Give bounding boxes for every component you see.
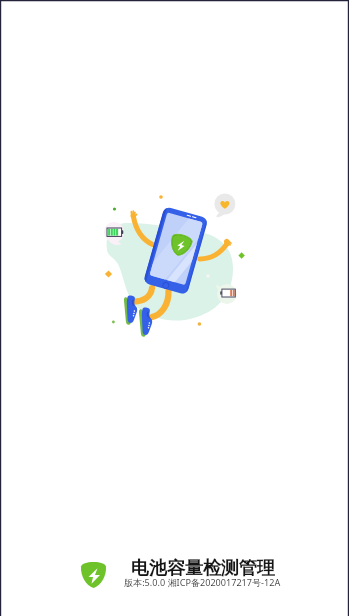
button[interactable]: 电池容量检测管理 (81, 555, 281, 590)
staticText: 版本:5.0.0 湘ICP备2020017217号-12A (124, 576, 281, 588)
staticText: 电池容量检测管理 (131, 557, 275, 580)
